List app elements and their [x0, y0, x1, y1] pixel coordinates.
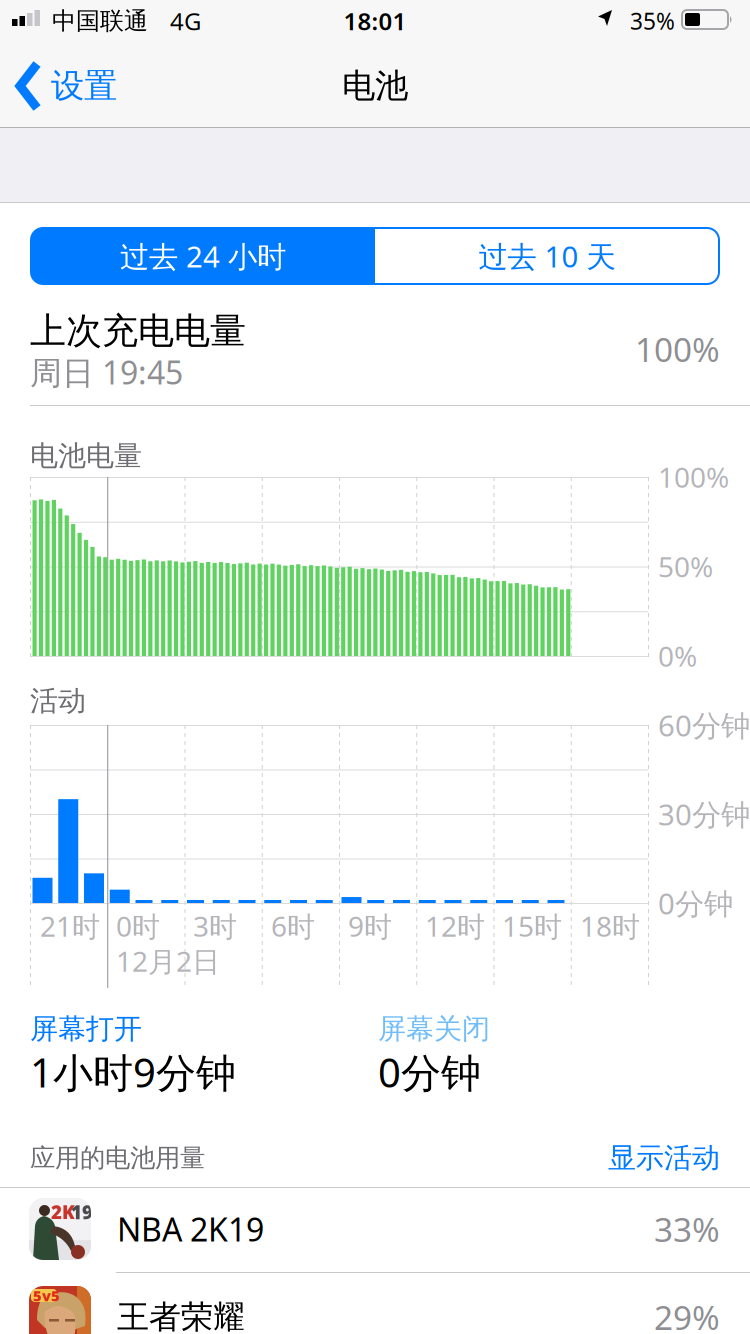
button[interactable]: 过去 10 天	[375, 228, 719, 284]
staticText: 15时	[502, 907, 562, 945]
staticText: 显示活动	[608, 1141, 720, 1175]
staticText: 29%	[654, 1295, 720, 1334]
staticText: 100%	[635, 327, 720, 371]
staticText: 12月2日	[116, 942, 220, 980]
staticText: 35%	[630, 6, 675, 36]
staticText: 2K	[51, 1200, 75, 1224]
staticText: 4G	[170, 5, 201, 37]
button[interactable]: 显示活动	[30, 1138, 720, 1178]
staticText: 周日 19:45	[30, 351, 183, 393]
staticText: 电池电量	[30, 439, 142, 473]
staticText: 3时	[193, 907, 237, 945]
staticText: 0时	[116, 907, 160, 945]
button[interactable]: 过去 24 小时	[31, 228, 375, 284]
staticText: 100%	[658, 458, 729, 496]
staticText: 设置	[51, 65, 117, 106]
staticText: 过去 24 小时	[120, 236, 286, 275]
staticText: 上次充电电量	[30, 309, 246, 353]
staticText: 21时	[40, 907, 100, 945]
staticText: 活动	[30, 684, 86, 718]
staticText: 12时	[425, 907, 485, 945]
staticText: 中国联通	[52, 6, 148, 36]
staticText: 60分钟	[658, 705, 750, 744]
staticText: 9时	[348, 907, 392, 945]
staticText: 6时	[271, 907, 315, 945]
staticText: 18:01	[343, 5, 406, 37]
button[interactable]: 2K	[0, 1188, 750, 1272]
staticText: 0分钟	[658, 883, 733, 922]
staticText: 王者荣耀	[117, 1297, 245, 1334]
staticText: 5v5	[33, 1286, 60, 1305]
staticText: 过去 10 天	[478, 236, 615, 275]
button[interactable]: 返回设置	[10, 55, 140, 117]
staticText: 30分钟	[658, 794, 750, 833]
staticText: 屏幕关闭	[378, 1012, 490, 1046]
staticText: NBA 2K19	[117, 1208, 264, 1250]
staticText: 电池	[342, 65, 408, 106]
staticText: 19	[71, 1200, 93, 1224]
staticText: 屏幕打开	[30, 1012, 142, 1046]
button[interactable]: 5v5	[0, 1276, 750, 1334]
staticText: 应用的电池用量	[30, 1142, 205, 1173]
staticText: 0%	[658, 637, 697, 675]
staticText: 33%	[654, 1207, 720, 1251]
button[interactable]: 屏幕关闭	[378, 1012, 490, 1098]
staticText: 50%	[658, 548, 713, 585]
button[interactable]: 屏幕打开	[30, 1012, 236, 1098]
staticText: 1小时9分钟	[30, 1045, 236, 1098]
staticText: 0分钟	[378, 1045, 481, 1098]
staticText: 18时	[580, 907, 640, 945]
